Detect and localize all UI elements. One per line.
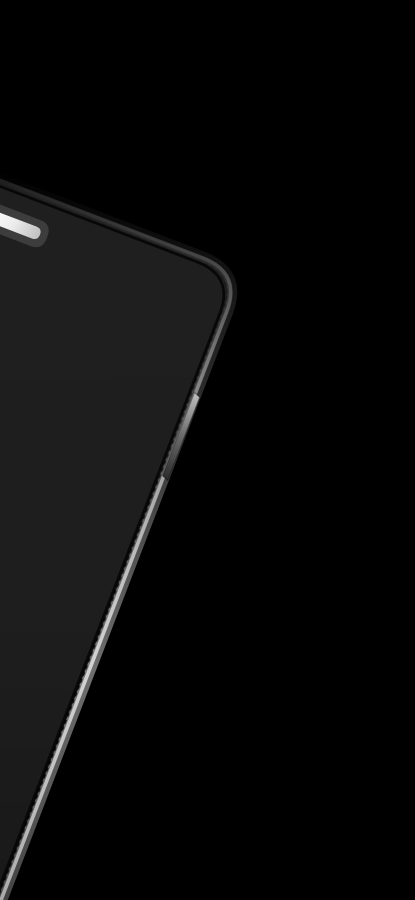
button[interactable]: Datenschutz screen on phone — [0, 0, 415, 900]
